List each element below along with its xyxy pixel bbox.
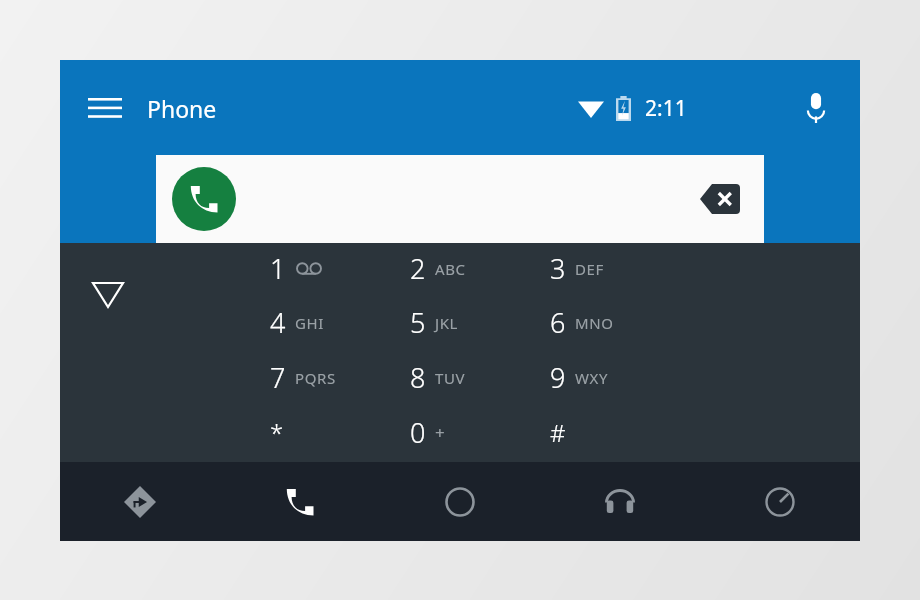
staticText: WXY	[575, 368, 609, 388]
other: Battery charging	[616, 96, 631, 121]
staticText: 0	[410, 414, 426, 451]
staticText: 4	[270, 304, 286, 341]
button[interactable]: Menu	[77, 80, 133, 136]
button[interactable]: Home	[380, 462, 540, 541]
button[interactable]: #	[540, 407, 680, 462]
staticText: TUV	[435, 368, 466, 388]
staticText: 3	[550, 250, 566, 287]
button[interactable]: Dashboard	[700, 462, 860, 541]
staticText: 2	[410, 250, 426, 287]
button[interactable]: Phone	[220, 462, 380, 541]
button[interactable]: 2	[400, 243, 540, 297]
staticText: #	[550, 416, 566, 449]
staticText: GHI	[295, 313, 324, 333]
staticText: 9	[550, 359, 566, 396]
button[interactable]: 5	[400, 297, 540, 352]
button[interactable]: Call	[156, 155, 764, 243]
button[interactable]: 7	[260, 352, 400, 407]
staticText: DEF	[575, 259, 604, 279]
staticText: 8	[410, 359, 426, 396]
staticText: ABC	[435, 259, 466, 279]
staticText: MNO	[575, 313, 614, 333]
staticText: 5	[410, 304, 426, 341]
staticText: JKL	[435, 313, 459, 333]
button[interactable]: Call	[172, 167, 236, 231]
staticText: Phone	[147, 93, 217, 124]
staticText: 6	[550, 304, 566, 341]
button[interactable]: 6	[540, 297, 680, 352]
button[interactable]: 1	[260, 243, 400, 297]
staticText: *	[270, 416, 284, 449]
staticText: 1	[270, 250, 286, 287]
button[interactable]: 9	[540, 352, 680, 407]
button[interactable]: Backspace	[698, 183, 742, 215]
button[interactable]: 8	[400, 352, 540, 407]
button[interactable]: Collapse	[80, 267, 136, 323]
staticText: PQRS	[295, 368, 336, 388]
button[interactable]: 3	[540, 243, 680, 297]
button[interactable]: 0	[400, 407, 540, 462]
button[interactable]: Voice search	[788, 80, 844, 136]
button[interactable]: 4	[260, 297, 400, 352]
staticText: +	[435, 421, 446, 444]
button[interactable]: *	[260, 407, 400, 462]
staticText: 7	[270, 359, 286, 396]
button[interactable]: Media	[540, 462, 700, 541]
button[interactable]: Navigation	[60, 462, 220, 541]
staticText: 2:11	[645, 94, 687, 123]
other: Wi-Fi	[578, 98, 604, 118]
